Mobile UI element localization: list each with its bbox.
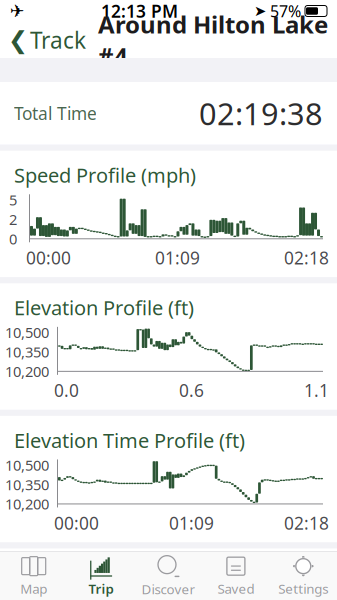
staticText: Map — [20, 580, 47, 597]
staticText: 01:09 — [155, 246, 200, 269]
button[interactable]: Map — [0, 551, 67, 600]
button[interactable]: Total Time — [0, 82, 337, 145]
staticText: Settings — [278, 580, 328, 597]
staticText: Track — [30, 25, 86, 55]
staticText: 10,500 — [5, 323, 49, 342]
staticText: Discover — [141, 580, 195, 598]
button[interactable]: ❮ — [0, 19, 86, 61]
staticText: Saved — [217, 580, 254, 597]
staticText: 01:09 — [169, 511, 214, 534]
staticText: Around Hilton Lake #4 — [98, 8, 328, 72]
button[interactable]: Distance — [0, 548, 337, 600]
staticText: 0.0 — [54, 379, 79, 402]
staticText: 1.1 — [304, 379, 329, 402]
staticText: 00:00 — [26, 246, 71, 269]
staticText: 12:13 PM — [101, 0, 178, 22]
staticText: 0 — [9, 229, 17, 248]
staticText: 10,200 — [5, 494, 49, 514]
staticText: 0.6 — [179, 379, 204, 402]
button[interactable]: Saved — [202, 551, 270, 600]
button[interactable]: Settings — [270, 551, 337, 600]
staticText: 2 — [9, 209, 17, 229]
staticText: 00:00 — [54, 511, 99, 534]
staticText: 5 — [9, 190, 17, 210]
staticText: 02:19:38 — [199, 93, 323, 134]
staticText: 10,500 — [5, 455, 49, 475]
staticText: 57% — [266, 0, 305, 22]
staticText: Total Time — [14, 102, 97, 125]
staticText: ❮ — [8, 26, 28, 54]
button[interactable]: Trip — [67, 551, 135, 600]
staticText: 1.11 mi — [216, 559, 323, 600]
staticText: 10,200 — [5, 362, 49, 381]
staticText: ✈ — [10, 1, 25, 21]
staticText: ➤ — [254, 3, 266, 19]
staticText: Elevation Profile (ft) — [14, 294, 194, 321]
staticText: Speed Profile (mph) — [14, 162, 196, 188]
staticText: Elevation Time Profile (ft) — [14, 427, 245, 453]
staticText: 10,350 — [5, 342, 49, 362]
button[interactable]: Discover — [135, 550, 202, 600]
staticText: 02:18 — [284, 511, 329, 534]
staticText: 10,350 — [5, 475, 49, 494]
staticText: 02:18 — [284, 246, 329, 269]
staticText: Trip — [89, 580, 114, 597]
staticText: Distance — [14, 568, 84, 591]
